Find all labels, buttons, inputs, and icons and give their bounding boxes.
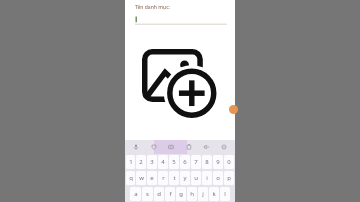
staticText: w xyxy=(139,174,144,182)
button[interactable]: Sound xyxy=(200,141,212,153)
button[interactable]: y xyxy=(180,171,190,185)
staticText: 2 xyxy=(139,158,143,166)
button[interactable]: s xyxy=(142,187,153,201)
staticText: 9 xyxy=(216,158,220,166)
staticText: k xyxy=(212,190,216,198)
button[interactable]: r xyxy=(158,171,168,185)
staticText: g xyxy=(179,190,183,198)
staticText: q xyxy=(129,174,133,182)
staticText: r xyxy=(162,174,165,182)
button[interactable]: 7 xyxy=(191,155,201,169)
button[interactable]: p xyxy=(224,171,234,185)
staticText: 4 xyxy=(161,158,165,166)
staticText: o xyxy=(216,174,220,182)
staticText: l xyxy=(224,190,226,198)
button[interactable]: k xyxy=(209,187,219,201)
button[interactable]: 5 xyxy=(169,155,179,169)
button[interactable]: l xyxy=(220,187,230,201)
button[interactable]: Stickers xyxy=(148,141,160,153)
staticText: y xyxy=(183,174,187,182)
button[interactable]: Voice input xyxy=(130,141,142,153)
staticText: h xyxy=(190,190,194,198)
staticText: 5 xyxy=(172,158,176,166)
staticText: i xyxy=(206,174,208,182)
button[interactable]: w xyxy=(136,171,146,185)
button[interactable]: 4 xyxy=(158,155,168,169)
staticText: a xyxy=(134,190,138,198)
staticText: 0 xyxy=(227,158,231,166)
staticText: u xyxy=(194,174,198,182)
button[interactable]: q xyxy=(126,171,135,185)
button[interactable]: f xyxy=(165,187,175,201)
button[interactable]: 3 xyxy=(147,155,157,169)
button[interactable]: j xyxy=(198,187,208,201)
button[interactable]: 8 xyxy=(202,155,212,169)
staticText: p xyxy=(227,174,231,182)
button[interactable]: o xyxy=(213,171,223,185)
staticText: t xyxy=(173,174,176,182)
button[interactable]: GIF xyxy=(165,141,177,153)
staticText: 7 xyxy=(194,158,198,166)
button[interactable]: t xyxy=(169,171,179,185)
staticText: 1 xyxy=(129,158,133,166)
staticText: f xyxy=(169,190,172,198)
button[interactable]: a xyxy=(130,187,141,201)
button[interactable] xyxy=(135,16,227,25)
staticText: 3 xyxy=(150,158,154,166)
staticText: s xyxy=(146,190,149,198)
staticText: 8 xyxy=(205,158,209,166)
staticText: j xyxy=(202,190,204,198)
button[interactable]: u xyxy=(191,171,201,185)
button[interactable]: 0 xyxy=(224,155,234,169)
button[interactable]: 6 xyxy=(180,155,190,169)
button[interactable]: 1 xyxy=(126,155,135,169)
button[interactable]: i xyxy=(202,171,212,185)
button[interactable]: 2 xyxy=(136,155,146,169)
button[interactable]: Clipboard xyxy=(183,141,195,153)
staticText: d xyxy=(157,190,161,198)
staticText: 6 xyxy=(183,158,187,166)
button[interactable]: d xyxy=(154,187,164,201)
staticText: e xyxy=(150,174,154,182)
button[interactable]: Add image xyxy=(142,49,218,117)
button[interactable]: h xyxy=(187,187,197,201)
button[interactable]: e xyxy=(147,171,157,185)
button[interactable]: Settings xyxy=(218,141,230,153)
button[interactable]: 9 xyxy=(213,155,223,169)
staticText: Tên danh mục: xyxy=(135,4,170,11)
button[interactable]: g xyxy=(176,187,186,201)
